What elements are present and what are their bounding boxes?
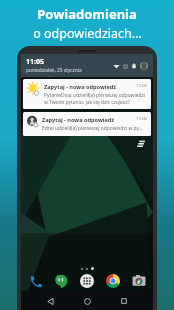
button[interactable]: Messages [53, 273, 69, 289]
staticText: poniedziałek, 25 stycznia [26, 67, 82, 74]
staticText: Edrei udzielił(a) pierwszej odpowiedzi w… [42, 125, 143, 132]
button[interactable]: Clear all notifications [137, 138, 147, 148]
staticText: o odpowiedziach... [33, 25, 142, 42]
button[interactable]: Apps [79, 273, 95, 289]
button[interactable]: Phone [27, 273, 43, 289]
staticText: 11:02 [136, 83, 147, 89]
staticText: PytanieDnia udzielił(a) pierwszej odpowi… [44, 92, 147, 105]
staticText: 11:02 [136, 116, 147, 122]
staticText: Powiadomienia [37, 5, 137, 23]
button[interactable]: User profile [140, 62, 148, 70]
button[interactable]: Zapytaj - nowa odpowiedź [23, 112, 151, 136]
button[interactable]: Chrome [105, 273, 121, 289]
staticText: Zapytaj - nowa odpowiedź [44, 83, 136, 91]
button[interactable]: Home [79, 293, 95, 309]
staticText: 11:05 [26, 57, 44, 67]
button[interactable]: Back [42, 293, 58, 309]
button[interactable]: Camera [131, 273, 147, 289]
button[interactable]: Zapytaj - nowa odpowiedź [23, 79, 151, 109]
button[interactable]: Recent apps [116, 293, 132, 309]
staticText: Zapytaj - nowa odpowiedź [42, 116, 136, 124]
